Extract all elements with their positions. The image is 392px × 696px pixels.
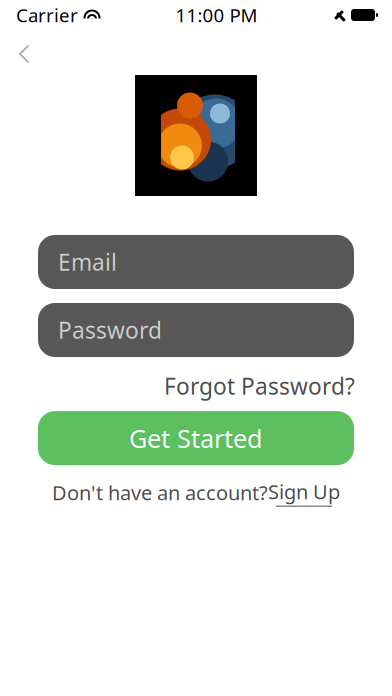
staticText: Don't have an account? (52, 479, 268, 506)
staticText: Carrier (16, 3, 78, 27)
button[interactable]: Forgot Password? (164, 371, 355, 401)
button[interactable]: Password (38, 303, 354, 357)
staticText: Forgot Password? (164, 371, 355, 401)
staticText: Sign Up (268, 478, 340, 505)
staticText: Email (58, 247, 117, 277)
button[interactable]: Back (2, 34, 46, 74)
staticText: Password (58, 315, 162, 345)
staticText: 11:00 PM (175, 3, 257, 27)
button[interactable]: Email (38, 235, 354, 289)
button[interactable]: Get Started (38, 411, 354, 465)
staticText: Get Started (129, 421, 263, 455)
button[interactable]: Sign Up (268, 478, 340, 507)
